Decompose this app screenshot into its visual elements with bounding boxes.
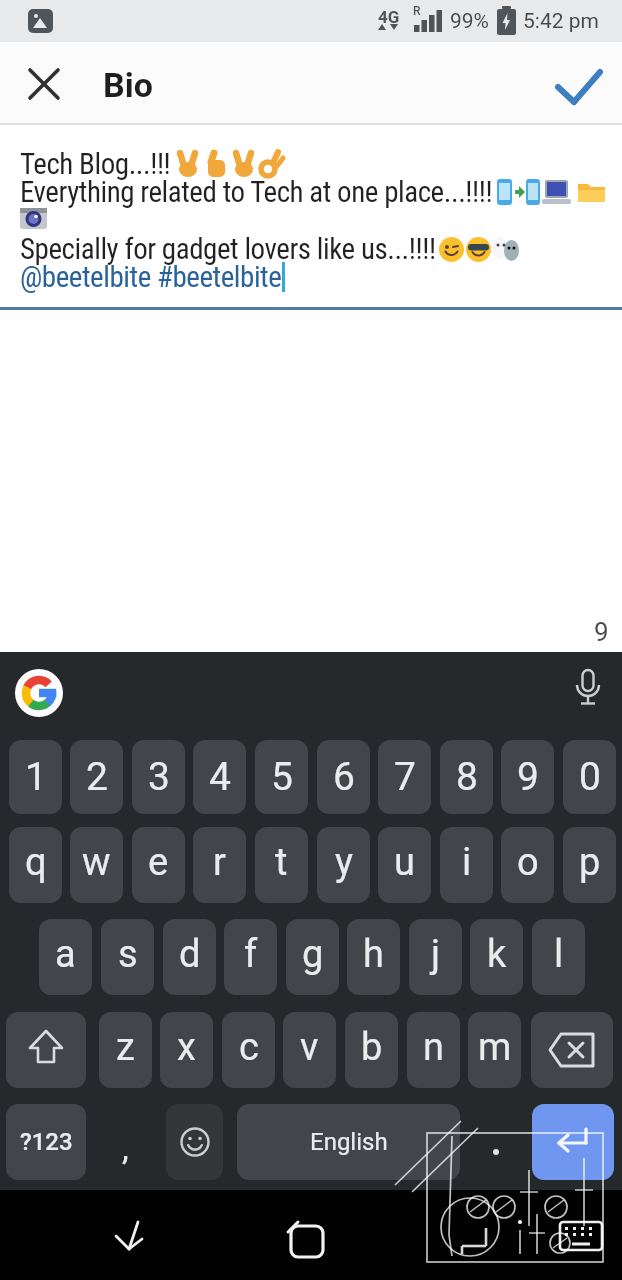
staticText: o xyxy=(517,840,539,885)
button[interactable]: e xyxy=(132,827,185,903)
staticText: c xyxy=(239,1025,259,1070)
button[interactable] xyxy=(108,1212,160,1264)
button[interactable] xyxy=(450,1220,498,1268)
staticText: 5 xyxy=(271,754,293,800)
staticText: r xyxy=(213,840,226,885)
staticText: 4G xyxy=(378,7,400,27)
staticText: a xyxy=(55,932,76,977)
button[interactable]: l xyxy=(532,919,585,995)
button[interactable] xyxy=(6,1012,86,1088)
staticText: m xyxy=(478,1025,512,1070)
staticText: 0 xyxy=(579,754,601,800)
staticText: 1 xyxy=(25,754,47,800)
button[interactable]: a xyxy=(39,919,92,995)
button[interactable]: j xyxy=(409,919,462,995)
staticText: English xyxy=(310,1128,388,1156)
button[interactable] xyxy=(570,667,606,715)
button[interactable] xyxy=(531,1012,613,1088)
button[interactable]: , xyxy=(99,1104,152,1180)
button[interactable]: u xyxy=(378,827,431,903)
button[interactable] xyxy=(532,1104,614,1180)
button[interactable]: y xyxy=(317,827,370,903)
button[interactable]: b xyxy=(345,1012,398,1088)
button[interactable]: m xyxy=(468,1012,521,1088)
staticText: 4 xyxy=(209,754,231,800)
staticText: g xyxy=(302,932,324,977)
staticText: u xyxy=(394,840,415,885)
button[interactable]: 7 xyxy=(378,740,431,814)
button[interactable]: 1 xyxy=(9,740,62,814)
button[interactable]: 5 xyxy=(255,740,308,814)
staticText: h xyxy=(363,932,384,977)
button[interactable]: q xyxy=(9,827,62,903)
staticText: p xyxy=(579,840,601,885)
staticText: l xyxy=(554,932,564,977)
staticText: x xyxy=(177,1025,196,1070)
staticText: 99% xyxy=(450,9,489,34)
button[interactable]: h xyxy=(347,919,400,995)
staticText: ?123 xyxy=(20,1128,73,1156)
staticText: e xyxy=(148,840,169,885)
staticText: 9 xyxy=(517,754,539,800)
staticText: 6 xyxy=(333,754,355,800)
button[interactable]: d xyxy=(163,919,216,995)
button[interactable] xyxy=(548,62,608,110)
staticText: f xyxy=(244,932,258,977)
button[interactable]: ?123 xyxy=(6,1104,86,1180)
staticText: i xyxy=(462,840,472,885)
button[interactable]: t xyxy=(255,827,308,903)
button[interactable]: z xyxy=(99,1012,152,1088)
staticText: Bio xyxy=(103,65,153,105)
button[interactable]: 0 xyxy=(563,740,616,814)
button[interactable]: f xyxy=(224,919,277,995)
staticText: y xyxy=(335,840,353,885)
button[interactable]: p xyxy=(563,827,616,903)
staticText: j xyxy=(431,932,441,977)
button[interactable]: o xyxy=(501,827,554,903)
staticText: R xyxy=(413,4,421,18)
staticText: 7 xyxy=(394,754,416,800)
staticText: Everything related to Tech at one place.… xyxy=(20,175,493,209)
staticText: s xyxy=(118,932,138,977)
button[interactable]: w xyxy=(70,827,123,903)
staticText: t xyxy=(275,840,288,885)
button[interactable]: 6 xyxy=(317,740,370,814)
button[interactable]: 4 xyxy=(193,740,246,814)
button[interactable]: 8 xyxy=(440,740,493,814)
button[interactable]: x xyxy=(160,1012,213,1088)
staticText: b xyxy=(361,1025,383,1070)
button[interactable] xyxy=(469,1104,522,1180)
staticText: k xyxy=(487,932,507,977)
button[interactable]: v xyxy=(283,1012,336,1088)
button[interactable]: 3 xyxy=(132,740,185,814)
button[interactable]: s xyxy=(101,919,154,995)
button[interactable]: 9 xyxy=(501,740,554,814)
staticText: 9 xyxy=(594,617,609,647)
staticText: , xyxy=(122,1128,129,1168)
button[interactable]: r xyxy=(193,827,246,903)
staticText: 3 xyxy=(148,754,170,800)
staticText: w xyxy=(82,840,111,885)
button[interactable]: English xyxy=(237,1104,460,1180)
button[interactable]: k xyxy=(470,919,523,995)
staticText: Specially for gadget lovers like us...!!… xyxy=(20,232,436,266)
button[interactable] xyxy=(166,1104,223,1180)
button[interactable]: n xyxy=(407,1012,460,1088)
staticText: 5:42 pm xyxy=(523,9,599,34)
staticText: n xyxy=(423,1025,444,1070)
staticText: v xyxy=(300,1025,319,1070)
button[interactable] xyxy=(552,1216,608,1260)
button[interactable] xyxy=(15,669,63,717)
button[interactable] xyxy=(284,1216,332,1264)
staticText: q xyxy=(25,840,47,885)
button[interactable] xyxy=(22,62,66,106)
button[interactable]: g xyxy=(286,919,339,995)
staticText: d xyxy=(179,932,201,977)
staticText: z xyxy=(116,1025,135,1070)
staticText: 8 xyxy=(456,754,478,800)
staticText: @beetelbite #beetelbite xyxy=(20,260,282,294)
button[interactable]: 2 xyxy=(70,740,123,814)
button[interactable]: c xyxy=(222,1012,275,1088)
staticText: Tech Blog...!!! xyxy=(20,147,171,181)
button[interactable]: i xyxy=(440,827,493,903)
